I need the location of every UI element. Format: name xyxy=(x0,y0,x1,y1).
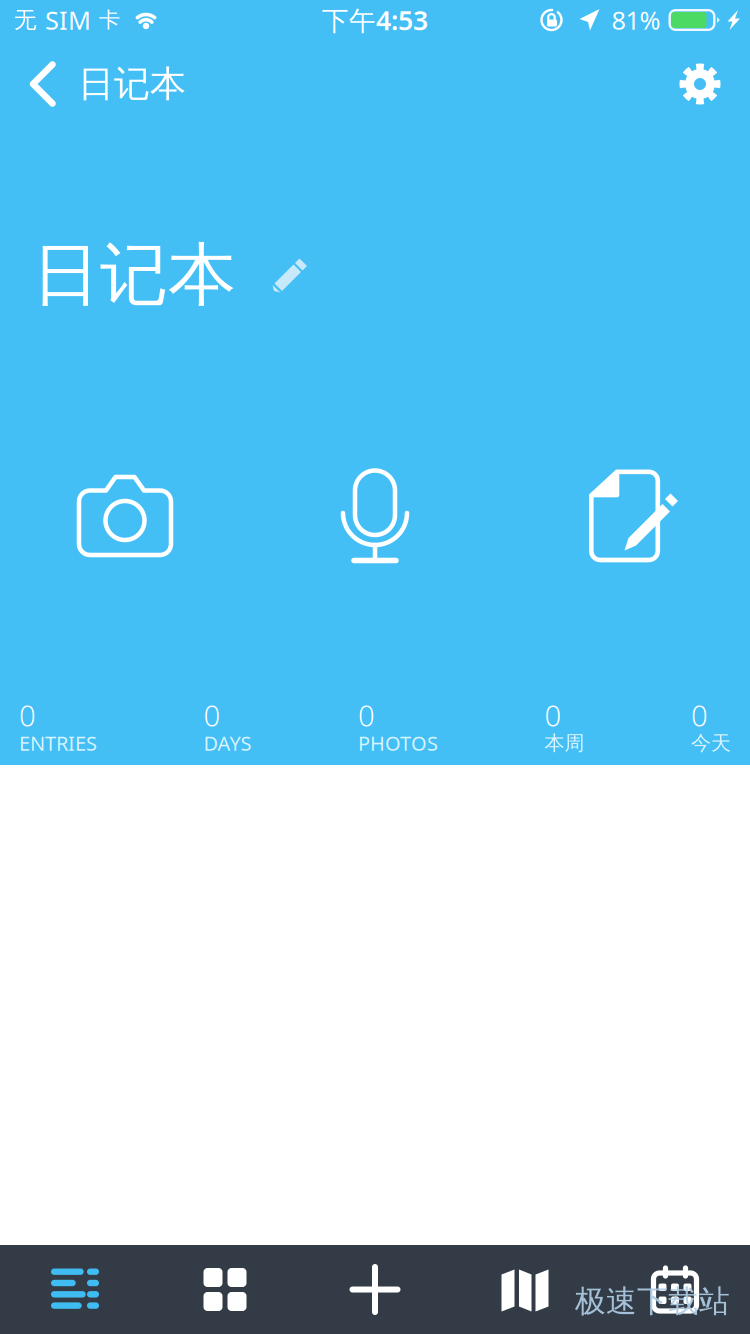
button[interactable]: New entry xyxy=(300,1245,450,1334)
button[interactable]: Add photo xyxy=(0,456,250,576)
button[interactable]: Rename journal xyxy=(236,243,324,307)
button[interactable]: Record audio xyxy=(250,456,500,576)
staticText: 0 xyxy=(358,695,375,734)
button[interactable]: Settings xyxy=(661,53,750,115)
staticText: 卡 xyxy=(99,7,120,33)
staticText: 日记本 xyxy=(32,233,236,317)
staticText: 0 xyxy=(691,695,708,734)
button[interactable]: Photo grid xyxy=(150,1245,300,1334)
button[interactable]: Map xyxy=(450,1245,600,1334)
button[interactable]: 日记本 xyxy=(0,53,204,115)
staticText: 本周 xyxy=(544,731,584,755)
button[interactable]: Calendar xyxy=(600,1245,750,1334)
staticText: ENTRIES xyxy=(19,730,97,756)
staticText: DAYS xyxy=(203,730,251,756)
staticText: 无 xyxy=(14,6,37,34)
staticText: 下午4:53 xyxy=(322,2,428,38)
staticText: PHOTOS xyxy=(358,730,438,756)
staticText: 日记本 xyxy=(78,62,186,106)
staticText: 0 xyxy=(19,695,36,734)
staticText: SIM xyxy=(45,3,91,37)
button[interactable]: Timeline xyxy=(0,1245,150,1334)
staticText: 0 xyxy=(544,695,561,734)
staticText: 今天 xyxy=(691,731,731,755)
staticText: 极速下载站 xyxy=(575,1282,730,1320)
button[interactable]: Write entry xyxy=(500,456,750,576)
staticText: 0 xyxy=(203,695,220,734)
staticText: 81% xyxy=(611,3,660,37)
